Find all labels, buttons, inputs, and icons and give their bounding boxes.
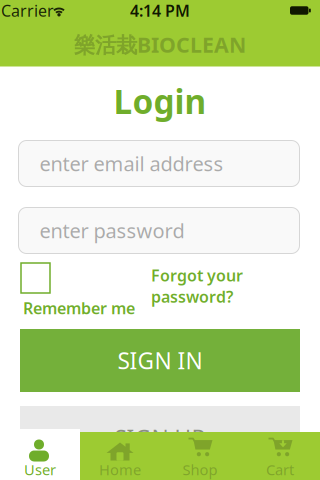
button[interactable]: enter email address [18, 140, 299, 186]
button[interactable]: SIGN IN [20, 329, 300, 392]
staticText: password? [151, 286, 233, 307]
staticText: Home [99, 460, 141, 479]
staticText: 樂活栽BIOCLEAN [74, 30, 246, 59]
button[interactable]: User [0, 432, 80, 480]
staticText: Login [113, 79, 206, 123]
staticText: 4:14 PM [130, 0, 190, 21]
button[interactable]: enter password [18, 207, 299, 253]
staticText: User [24, 460, 56, 479]
button[interactable]: SIGN UP [20, 406, 300, 469]
staticText: SIGN IN [117, 345, 202, 375]
staticText: enter email address [39, 150, 223, 177]
button[interactable]: Forgot your [151, 265, 261, 307]
staticText: Forgot your [151, 265, 243, 286]
staticText: SIGN UP [114, 423, 205, 453]
staticText: Shop [182, 460, 217, 479]
staticText: Cart [266, 460, 294, 479]
button[interactable]: Remember me [21, 263, 50, 293]
staticText: Carrier [1, 0, 54, 21]
staticText: Remember me [23, 297, 135, 319]
button[interactable]: Shop [160, 432, 240, 480]
staticText: enter password [39, 217, 184, 244]
button[interactable]: Cart [240, 432, 320, 480]
button[interactable]: Home [80, 432, 160, 480]
